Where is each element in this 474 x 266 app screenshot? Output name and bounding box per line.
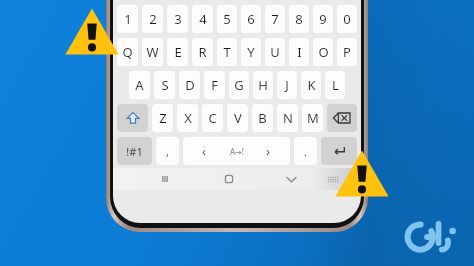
button[interactable]: Space bbox=[183, 137, 290, 165]
staticText: Z bbox=[159, 109, 167, 127]
button[interactable]: S bbox=[154, 71, 175, 99]
staticText: G bbox=[234, 76, 244, 94]
staticText: 8 bbox=[295, 10, 303, 28]
button[interactable]: . bbox=[294, 137, 317, 165]
button[interactable]: D bbox=[179, 71, 200, 99]
staticText: 1 bbox=[124, 10, 132, 28]
button[interactable]: Home bbox=[197, 168, 260, 190]
button[interactable]: P bbox=[337, 38, 357, 66]
button[interactable]: 0 bbox=[337, 5, 357, 33]
staticText: 9 bbox=[319, 10, 327, 28]
button[interactable]: 1 bbox=[117, 5, 138, 33]
button[interactable]: M bbox=[302, 104, 323, 132]
staticText: R bbox=[198, 43, 207, 61]
staticText: C bbox=[208, 109, 217, 127]
staticText: 6 bbox=[247, 10, 255, 28]
button[interactable]: B bbox=[252, 104, 273, 132]
staticText: A→! bbox=[230, 146, 244, 157]
button[interactable]: !#1 bbox=[117, 137, 152, 165]
staticText: B bbox=[258, 109, 267, 127]
staticText: A bbox=[135, 76, 144, 94]
button[interactable]: L bbox=[325, 71, 345, 99]
button[interactable]: A bbox=[129, 71, 150, 99]
button[interactable]: T bbox=[217, 38, 237, 66]
staticText: P bbox=[343, 43, 351, 61]
staticText: !#1 bbox=[126, 144, 143, 159]
button[interactable]: F bbox=[204, 71, 225, 99]
button[interactable]: 3 bbox=[167, 5, 188, 33]
button[interactable]: 4 bbox=[192, 5, 213, 33]
button[interactable]: Z bbox=[152, 104, 173, 132]
staticText: K bbox=[307, 76, 316, 94]
button[interactable]: I bbox=[289, 38, 309, 66]
staticText: M bbox=[307, 109, 319, 127]
button[interactable]: Recents bbox=[133, 168, 197, 190]
staticText: ‹ bbox=[202, 142, 207, 160]
staticText: V bbox=[234, 109, 242, 127]
staticText: 2 bbox=[149, 10, 157, 28]
staticText: X bbox=[184, 109, 192, 127]
staticText: F bbox=[211, 76, 218, 94]
button[interactable]: K bbox=[301, 71, 321, 99]
button[interactable]: 5 bbox=[217, 5, 237, 33]
staticText: 5 bbox=[223, 10, 231, 28]
button[interactable]: J bbox=[277, 71, 297, 99]
staticText: I bbox=[297, 43, 302, 61]
staticText: T bbox=[223, 43, 231, 61]
button[interactable]: Enter bbox=[321, 137, 357, 165]
button[interactable]: Q bbox=[117, 38, 138, 66]
staticText: , bbox=[166, 144, 169, 159]
staticText: J bbox=[285, 76, 289, 94]
staticText: O bbox=[318, 43, 329, 61]
button[interactable]: 8 bbox=[289, 5, 309, 33]
button[interactable]: C bbox=[202, 104, 223, 132]
button[interactable]: E bbox=[167, 38, 188, 66]
button[interactable]: 7 bbox=[265, 5, 285, 33]
staticText: N bbox=[283, 109, 293, 127]
button[interactable]: , bbox=[156, 137, 179, 165]
staticText: E bbox=[174, 43, 182, 61]
staticText: W bbox=[146, 43, 159, 61]
staticText: Y bbox=[247, 43, 255, 61]
staticText: L bbox=[332, 76, 339, 94]
staticText: › bbox=[266, 142, 271, 160]
staticText: 3 bbox=[174, 10, 182, 28]
button[interactable]: R bbox=[192, 38, 213, 66]
staticText: 4 bbox=[199, 10, 207, 28]
staticText: H bbox=[258, 76, 268, 94]
button[interactable]: U bbox=[265, 38, 285, 66]
button[interactable]: O bbox=[313, 38, 333, 66]
button[interactable]: Backspace bbox=[327, 104, 357, 132]
staticText: 7 bbox=[271, 10, 279, 28]
staticText: Q bbox=[122, 43, 133, 61]
button[interactable]: 9 bbox=[313, 5, 333, 33]
button[interactable]: X bbox=[177, 104, 198, 132]
button[interactable]: 6 bbox=[241, 5, 261, 33]
button[interactable]: N bbox=[277, 104, 298, 132]
button[interactable]: Y bbox=[241, 38, 261, 66]
button[interactable]: W bbox=[142, 38, 163, 66]
button[interactable]: Keyboard layout bbox=[323, 168, 341, 190]
staticText: U bbox=[270, 43, 280, 61]
button[interactable]: G bbox=[229, 71, 249, 99]
button[interactable]: Hide keyboard bbox=[260, 168, 323, 190]
button[interactable]: Shift bbox=[117, 104, 148, 132]
staticText: D bbox=[185, 76, 195, 94]
staticText: 0 bbox=[343, 10, 351, 28]
staticText: . bbox=[304, 144, 307, 159]
staticText: S bbox=[161, 76, 169, 94]
button[interactable]: H bbox=[253, 71, 273, 99]
button[interactable]: V bbox=[227, 104, 248, 132]
button[interactable]: 2 bbox=[142, 5, 163, 33]
